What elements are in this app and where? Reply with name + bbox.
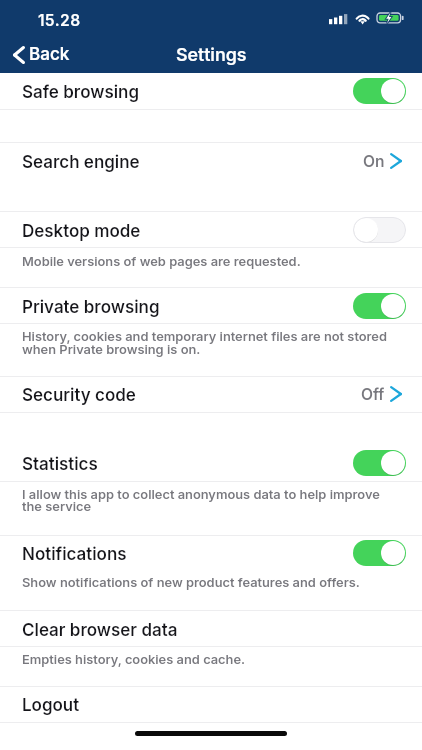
staticText: Empties history, cookies and cache. [22,652,422,668]
button[interactable] [0,413,422,481]
button[interactable]: Desktop mode [353,217,406,243]
staticText: Logout [22,695,80,716]
button[interactable] [0,143,422,211]
staticText: Statistics [22,454,98,475]
staticText: the service [22,499,422,515]
button[interactable] [0,536,422,610]
staticText: Show notifications of new product featur… [22,575,422,591]
button[interactable] [0,377,422,412]
button[interactable] [0,73,422,109]
button[interactable]: Notifications [353,540,406,566]
button[interactable]: Back [0,36,84,73]
button[interactable] [0,687,422,722]
staticText: Mobile versions of web pages are request… [22,254,422,270]
staticText: On [363,152,385,171]
staticText: Clear browser data [22,620,178,641]
staticText: Security code [22,385,136,406]
staticText: Search engine [22,152,140,173]
staticText: Private browsing [22,297,160,318]
staticText: History, cookies and temporary internet … [22,329,422,345]
staticText: Settings [176,44,247,66]
staticText: Desktop mode [22,221,141,242]
button[interactable] [0,288,422,323]
staticText: Safe browsing [22,82,140,103]
button[interactable]: On [0,147,422,175]
button[interactable]: Statistics [353,450,406,476]
button[interactable]: Private browsing [353,293,406,319]
staticText: Off [361,385,385,404]
button[interactable] [0,611,422,646]
staticText: when Private browsing is on. [22,342,422,358]
staticText: I allow this app to collect anonymous da… [22,487,422,503]
button[interactable] [0,212,422,247]
staticText: Back [29,44,70,65]
button[interactable]: Off [0,380,422,408]
staticText: 15.28 [38,11,81,30]
button[interactable]: Safe browsing [353,78,406,104]
staticText: Notifications [22,544,127,565]
